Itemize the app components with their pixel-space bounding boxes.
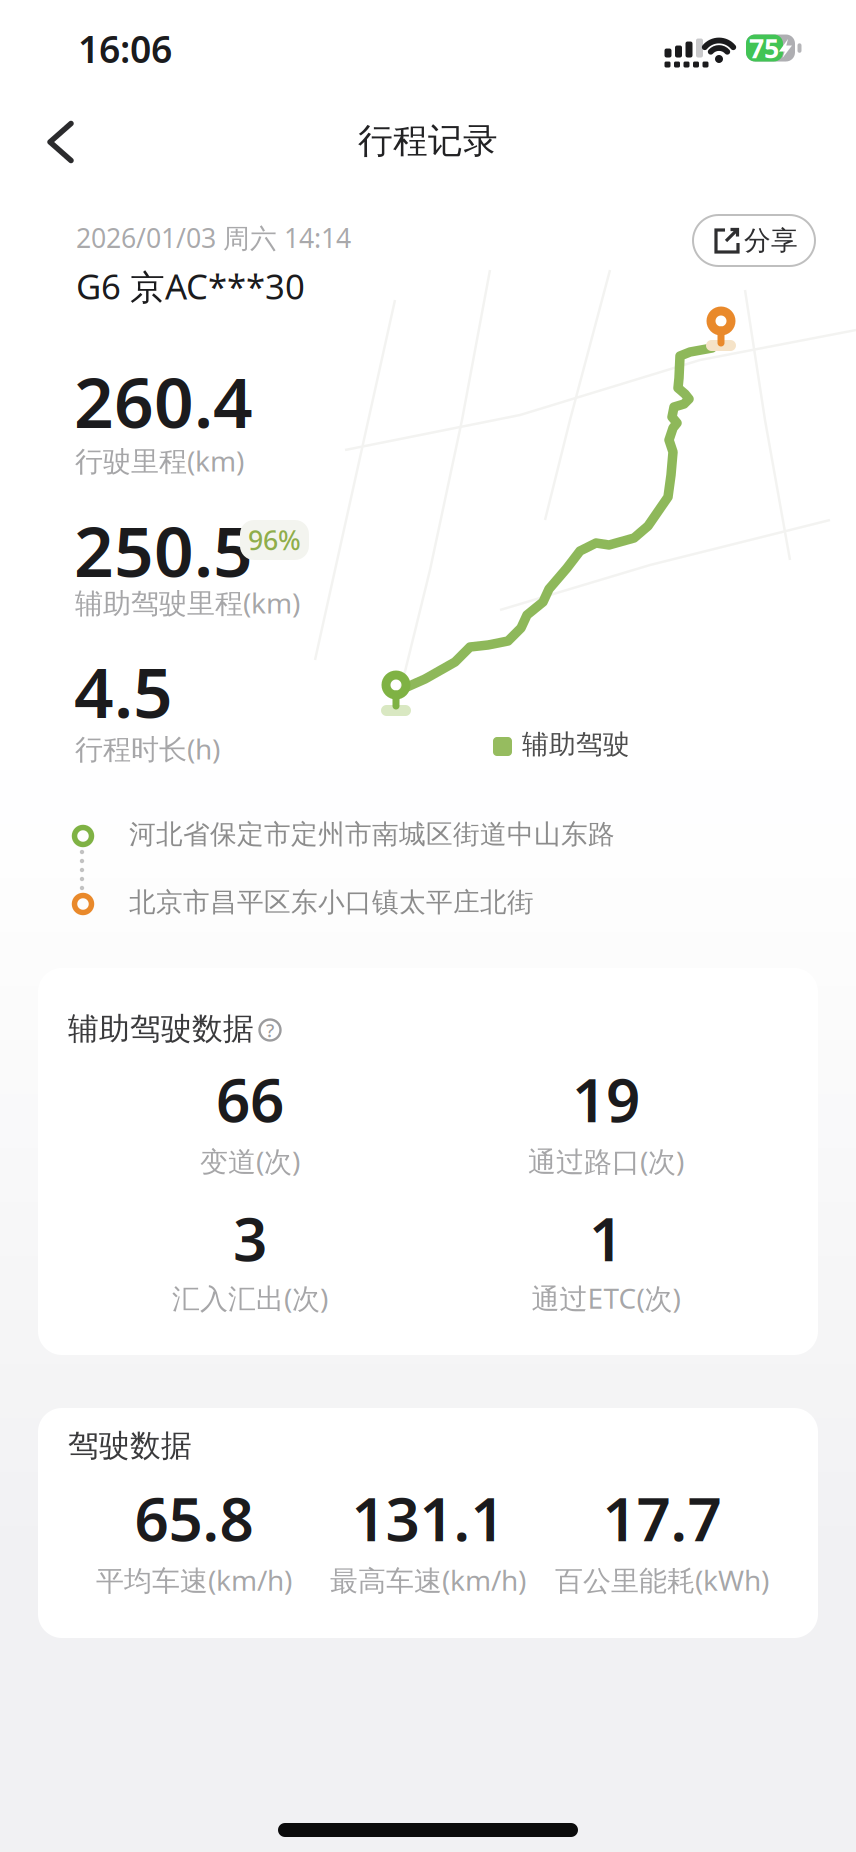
staticText: 250.5 bbox=[74, 504, 253, 596]
staticText: 百公里能耗(kWh) bbox=[555, 1561, 769, 1599]
staticText: 辅助驾驶数据 bbox=[68, 1010, 254, 1048]
staticText: 行程时长(h) bbox=[75, 730, 220, 767]
staticText: 变道(次) bbox=[200, 1142, 300, 1180]
staticText: 2026/01/03 周六 14:14 bbox=[76, 220, 351, 255]
staticText: 4.5 bbox=[74, 645, 173, 737]
staticText: 分享 bbox=[744, 224, 798, 257]
staticText: 通过路口(次) bbox=[528, 1142, 684, 1180]
staticText: 辅助驾驶 bbox=[522, 728, 630, 761]
button[interactable]: ? bbox=[258, 1018, 282, 1042]
staticText: 65.8 bbox=[134, 1478, 253, 1558]
staticText: 汇入汇出(次) bbox=[172, 1279, 328, 1317]
staticText: 75 bbox=[749, 30, 779, 66]
staticText: 北京市昌平区东小口镇太平庄北街 bbox=[129, 886, 534, 919]
staticText: G6 京AC***30 bbox=[76, 263, 305, 309]
staticText: 66 bbox=[216, 1059, 284, 1139]
staticText: 131.1 bbox=[351, 1478, 504, 1558]
staticText: 行驶里程(km) bbox=[75, 442, 244, 479]
staticText: 河北省保定市定州市南城区街道中山东路 bbox=[129, 818, 615, 851]
staticText: 驾驶数据 bbox=[68, 1427, 192, 1465]
staticText: 96% bbox=[248, 522, 301, 558]
staticText: 通过ETC(次) bbox=[531, 1279, 680, 1317]
button[interactable] bbox=[35, 116, 87, 167]
staticText: 最高车速(km/h) bbox=[330, 1561, 526, 1599]
staticText: 19 bbox=[572, 1059, 640, 1139]
button[interactable]: 分享 bbox=[692, 214, 816, 267]
staticText: 3 bbox=[233, 1198, 267, 1278]
staticText: 行程记录 bbox=[358, 120, 498, 162]
staticText: 260.4 bbox=[74, 355, 253, 447]
staticText: 1 bbox=[589, 1198, 623, 1278]
staticText: ? bbox=[266, 1018, 274, 1042]
staticText: 17.7 bbox=[602, 1478, 721, 1558]
staticText: 辅助驾驶里程(km) bbox=[75, 584, 300, 621]
staticText: 16:06 bbox=[78, 24, 172, 73]
staticText: 平均车速(km/h) bbox=[96, 1561, 292, 1599]
